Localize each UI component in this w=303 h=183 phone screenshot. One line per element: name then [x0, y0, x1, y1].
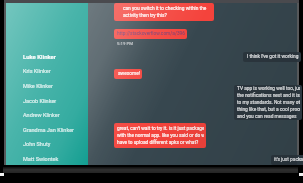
button[interactable]: can you switch it to checking within the…: [114, 3, 214, 21]
staticText: I think I've got it working: [247, 54, 299, 60]
button[interactable]: Luke Klinker: [6, 49, 88, 64]
staticText: Mike Klinker: [23, 83, 53, 89]
button[interactable]: Matt Swiontek: [6, 151, 88, 166]
staticText: can you switch it to checking within the…: [123, 6, 207, 18]
button[interactable]: great, can't wait to try it. is it just …: [114, 123, 206, 148]
button[interactable]: it's just packaged: [271, 155, 303, 165]
button[interactable]: Jacob Klinker: [6, 93, 88, 108]
staticText: 5:19 PM: [117, 41, 134, 46]
button[interactable]: TV app is working well too, just need th…: [234, 85, 302, 120]
button[interactable]: http://stackoverflow.com/a/39690: [114, 29, 187, 39]
staticText: Matt Swiontek: [23, 156, 59, 162]
staticText: great, can't wait to try it. is it just …: [117, 126, 204, 145]
staticText: it's just packaged: [274, 157, 303, 163]
staticText: Andrew Klinker: [23, 112, 60, 118]
button[interactable]: awesome!: [114, 69, 142, 79]
staticText: awesome!: [118, 71, 140, 77]
staticText: John Shuty: [23, 141, 51, 147]
staticText: Luke Klinker: [23, 53, 56, 60]
button[interactable]: Mike Klinker: [6, 78, 88, 93]
staticText: Grandma Jan Klinker: [23, 127, 74, 133]
button[interactable]: Grandma Jan Klinker: [6, 122, 88, 137]
button[interactable]: John Shuty: [6, 136, 88, 151]
button[interactable]: I think I've got it working: [243, 52, 301, 62]
button[interactable]: Andrew Klinker: [6, 107, 88, 122]
staticText: Kris Klinker: [23, 68, 51, 74]
staticText: TV app is working well too, just need th…: [237, 86, 300, 119]
button[interactable]: Kris Klinker: [6, 63, 88, 78]
staticText: http://stackoverflow.com/a/39690: [117, 31, 185, 37]
staticText: Jacob Klinker: [23, 98, 57, 104]
